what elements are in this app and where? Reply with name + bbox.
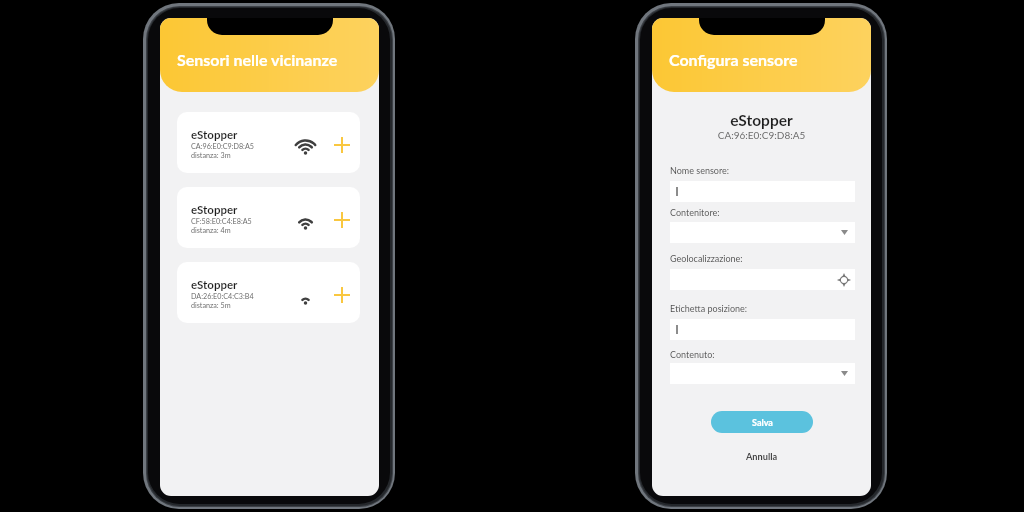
staticText: CF:58:E0:C4:E8:A5 [191,217,252,226]
staticText: Annulla [746,451,778,462]
staticText: distanza: 5m [191,301,231,310]
button[interactable]: Signal strength [291,281,319,309]
button[interactable]: Salva [711,411,813,433]
button[interactable] [670,319,855,340]
staticText: CA:96:E0:C9:D8:A5 [191,142,254,151]
button[interactable]: Open dropdown [670,222,855,243]
staticText: Configura sensore [669,50,798,69]
other: Open dropdown [841,371,848,376]
staticText: CA:96:E0:C9:D8:A5 [652,129,871,141]
other: Use my location [837,273,851,287]
other: Open dropdown [841,230,848,235]
staticText: eStopper [191,278,238,292]
staticText: distanza: 3m [191,151,231,160]
button[interactable]: eStopper [177,187,360,248]
staticText: Sensori nelle vicinanze [177,50,338,69]
button[interactable]: eStopper [177,112,360,173]
staticText: Geolocalizzazione: [670,253,743,264]
staticText: Salva [752,417,773,428]
button[interactable]: Add sensor [328,206,356,234]
button[interactable] [670,181,855,202]
button[interactable]: eStopper [177,262,360,323]
button[interactable]: Add sensor [328,281,356,309]
staticText: DA:26:E0:C4:C3:B4 [191,292,254,301]
staticText: eStopper [191,203,238,217]
staticText: distanza: 4m [191,226,231,235]
staticText: Contenitore: [670,207,720,218]
staticText: Etichetta posizione: [670,303,748,314]
button[interactable]: Open dropdown [670,363,855,384]
button[interactable]: Use my location [670,269,855,290]
button[interactable]: Add sensor [328,131,356,159]
staticText: Contenuto: [670,349,715,360]
button[interactable]: Signal strength [291,206,319,234]
button[interactable]: Signal strength [291,131,319,159]
staticText: Nome sensore: [670,165,730,176]
staticText: eStopper [652,111,871,130]
staticText: eStopper [191,128,238,142]
button[interactable]: Annulla [738,446,786,467]
